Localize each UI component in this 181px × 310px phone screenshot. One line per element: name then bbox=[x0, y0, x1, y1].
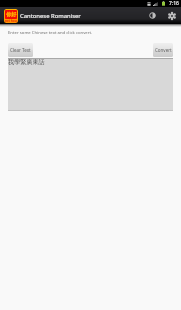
button[interactable]: Settings bbox=[162, 7, 181, 24]
staticText: Convert bbox=[155, 47, 172, 53]
staticText: 7:16 bbox=[169, 0, 179, 7]
staticText: 你好 bbox=[6, 11, 17, 18]
staticText: Enter some Chinese text and click conver… bbox=[8, 29, 93, 35]
staticText: nei hou bbox=[5, 19, 17, 23]
staticText: Clear Text bbox=[10, 47, 31, 53]
button[interactable]: Clear Text bbox=[8, 43, 33, 57]
staticText: 我學緊廣東話 bbox=[8, 58, 45, 66]
button[interactable]: Convert bbox=[153, 43, 173, 57]
button[interactable]: Toggle theme bbox=[143, 7, 162, 24]
staticText: Cantonese Romaniser bbox=[20, 12, 81, 20]
